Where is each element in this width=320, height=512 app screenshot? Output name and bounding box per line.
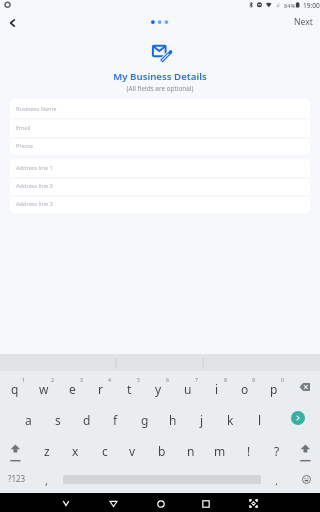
button[interactable]: Backspace <box>290 373 319 401</box>
staticText: f <box>113 412 118 428</box>
staticText: , <box>45 473 48 488</box>
staticText: 9 <box>252 376 255 383</box>
staticText: ! <box>247 443 251 459</box>
button[interactable]: Period <box>264 464 288 492</box>
staticText: b <box>158 443 166 459</box>
staticText: p <box>270 381 278 397</box>
button[interactable]: Comma <box>33 464 59 492</box>
button[interactable]: Shift <box>291 436 320 464</box>
button[interactable]: h <box>158 405 187 433</box>
staticText: 5 <box>137 376 140 383</box>
staticText: m <box>214 443 226 459</box>
button[interactable]: 6 <box>144 374 173 402</box>
button[interactable]: a <box>14 405 43 433</box>
button[interactable]: k <box>216 405 245 433</box>
button[interactable]: 8 <box>202 374 231 402</box>
staticText: 84% <box>284 2 296 10</box>
staticText: n <box>187 443 195 459</box>
button[interactable]: 0 <box>259 374 288 402</box>
button[interactable]: 7 <box>173 374 202 402</box>
button[interactable]: z <box>32 436 61 464</box>
button[interactable]: v <box>118 436 147 464</box>
staticText: 2 <box>51 376 54 383</box>
staticText: i <box>215 381 219 397</box>
button[interactable]: s <box>43 405 72 433</box>
staticText: l <box>258 412 262 428</box>
button[interactable]: b <box>147 436 176 464</box>
staticText: q <box>11 381 19 397</box>
staticText: x <box>72 443 79 459</box>
button[interactable]: ? <box>262 436 291 464</box>
button[interactable]: Home <box>151 494 171 512</box>
button[interactable]: j <box>187 405 216 433</box>
staticText: My Business Details <box>0 70 320 83</box>
staticText: 4 <box>108 376 111 383</box>
button[interactable]: x <box>61 436 90 464</box>
staticText: Phone <box>16 142 33 150</box>
staticText: v <box>129 443 136 459</box>
button[interactable]: Hide keyboard <box>56 494 76 512</box>
staticText: s <box>55 412 61 428</box>
button[interactable]: ?123 <box>2 464 31 492</box>
staticText: Address line 1 <box>16 164 53 172</box>
staticText: (All fields are optional) <box>0 84 320 93</box>
staticText: j <box>200 412 204 428</box>
button[interactable]: Switch keyboard <box>243 494 263 512</box>
button[interactable]: c <box>90 436 119 464</box>
button[interactable]: 1 <box>0 374 29 402</box>
staticText: Next <box>294 16 313 28</box>
staticText: w <box>39 381 49 397</box>
button[interactable]: Address line 2 <box>10 177 310 195</box>
button[interactable]: 9 <box>230 374 259 402</box>
button[interactable]: Next <box>288 12 316 32</box>
staticText: ? <box>274 443 280 459</box>
button[interactable]: Email <box>10 118 310 137</box>
staticText: ?123 <box>8 473 26 484</box>
staticText: 7 <box>195 376 198 383</box>
button[interactable]: n <box>176 436 205 464</box>
staticText: 6 <box>166 376 169 383</box>
staticText: . <box>275 473 278 488</box>
staticText: u <box>184 381 192 397</box>
button[interactable]: Address line 1 <box>10 159 310 177</box>
staticText: g <box>141 412 149 428</box>
staticText: d <box>83 412 91 428</box>
staticText: c <box>102 443 108 459</box>
staticText: k <box>227 412 234 428</box>
button[interactable]: g <box>130 405 159 433</box>
button[interactable]: Emoji <box>292 465 320 493</box>
button[interactable]: l <box>245 405 274 433</box>
button[interactable]: m <box>205 436 234 464</box>
button[interactable]: Business Name <box>10 99 310 118</box>
staticText: 8 <box>224 376 227 383</box>
button[interactable]: Back <box>0 11 24 35</box>
staticText: 0 <box>281 376 284 383</box>
button[interactable]: Recents <box>196 494 216 512</box>
staticText: 3 <box>80 376 83 383</box>
button[interactable]: Enter <box>283 404 312 432</box>
staticText: 1 <box>22 376 25 383</box>
button[interactable]: Shift <box>1 436 30 464</box>
button[interactable]: 3 <box>58 374 87 402</box>
staticText: t <box>127 381 132 397</box>
staticText: e <box>69 381 76 397</box>
button[interactable]: f <box>101 405 130 433</box>
button[interactable]: Back <box>103 494 123 512</box>
staticText: a <box>25 412 32 428</box>
staticText: o <box>241 381 249 397</box>
staticText: 19:00 <box>303 1 320 10</box>
staticText: r <box>98 381 103 397</box>
staticText: h <box>169 412 177 428</box>
button[interactable]: Phone <box>10 137 310 155</box>
button[interactable]: 2 <box>29 374 58 402</box>
staticText: Email <box>16 124 31 132</box>
staticText: z <box>44 443 50 459</box>
button[interactable]: 5 <box>115 374 144 402</box>
button[interactable]: Address line 3 <box>10 195 310 213</box>
button[interactable]: d <box>72 405 101 433</box>
staticText: Business Name <box>16 105 57 113</box>
button[interactable]: ! <box>234 436 263 464</box>
button[interactable]: 4 <box>86 374 115 402</box>
staticText: Address line 3 <box>16 200 53 208</box>
